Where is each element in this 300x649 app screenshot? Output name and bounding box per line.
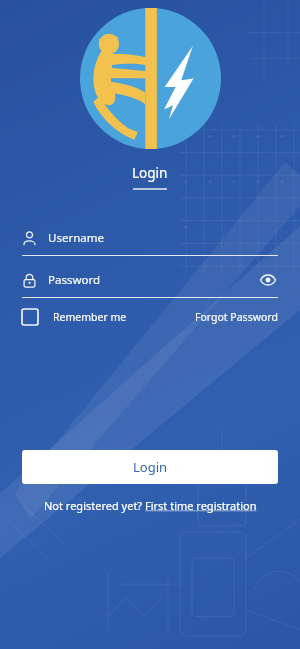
staticText: Password	[48, 272, 101, 288]
button[interactable]: Forgot Password	[195, 310, 278, 324]
staticText: First time registration	[145, 498, 257, 513]
staticText: Remember me	[53, 310, 127, 324]
button[interactable]: Show password	[258, 270, 278, 290]
button[interactable]: Login	[22, 450, 278, 484]
staticText: Forgot Password	[195, 310, 278, 324]
staticText: Login	[133, 458, 168, 476]
staticText: Login	[132, 164, 168, 182]
button[interactable]: First time registration	[145, 498, 257, 513]
button[interactable]: Remember me	[22, 309, 127, 325]
button[interactable]: Login	[120, 162, 180, 184]
staticText: Not registered yet?	[44, 498, 145, 513]
staticText: Username	[48, 230, 104, 246]
